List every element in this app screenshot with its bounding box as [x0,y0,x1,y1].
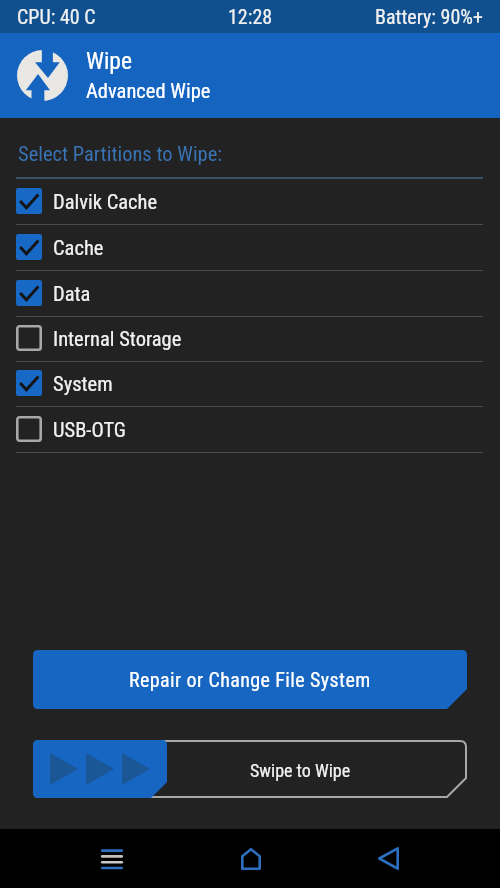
staticText: Repair or Change File System [129,668,371,691]
button[interactable]: USB-OTG [0,407,500,453]
staticText: Select Partitions to Wipe: [18,142,223,166]
staticText: Internal Storage [53,327,182,351]
button[interactable]: Cache [0,225,500,271]
staticText: CPU: 40 C [17,5,96,28]
staticText: Battery: 90%+ [375,5,483,28]
staticText: Swipe to Wipe [250,760,351,781]
button[interactable]: Home [217,829,284,888]
staticText: USB-OTG [53,418,126,442]
button[interactable]: Data [0,271,500,317]
button[interactable]: System [0,362,500,407]
button[interactable]: Dalvik Cache [0,179,500,225]
staticText: Cache [53,236,104,260]
staticText: Wipe [86,47,132,75]
staticText: System [53,372,113,396]
button[interactable]: Internal Storage [0,317,500,362]
button[interactable]: Repair or Change File System [33,650,467,709]
staticText: Dalvik Cache [53,190,158,214]
button[interactable]: Back [355,829,422,888]
staticText: Advanced Wipe [86,79,211,103]
staticText: Data [53,282,91,306]
button[interactable]: Menu [78,829,145,888]
button[interactable]: Swipe to Wipe [33,740,467,798]
staticText: 12:28 [228,5,273,28]
